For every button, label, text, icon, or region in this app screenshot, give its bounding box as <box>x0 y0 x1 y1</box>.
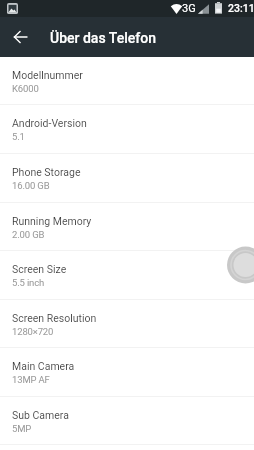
button[interactable]: Back <box>0 17 40 57</box>
button[interactable]: Screen Resolution <box>0 300 254 348</box>
staticText: K6000 <box>12 83 39 94</box>
staticText: 5.1 <box>12 131 25 142</box>
button[interactable]: Android-Version <box>0 105 254 154</box>
staticText: 5.5 inch <box>12 277 45 288</box>
button[interactable]: Screen Size <box>0 251 254 300</box>
staticText: 2.00 GB <box>12 229 45 240</box>
button[interactable]: Running Memory <box>0 203 254 251</box>
button[interactable]: Phone Storage <box>0 154 254 203</box>
staticText: 13MP AF <box>12 374 50 385</box>
staticText: Screen Size <box>12 263 67 275</box>
staticText: 5MP <box>12 423 32 434</box>
button[interactable]: Modellnummer <box>0 57 254 105</box>
staticText: 1280×720 <box>12 326 54 337</box>
button[interactable]: Main Camera <box>0 348 254 397</box>
staticText: Android-Version <box>12 117 87 129</box>
staticText: 16.00 GB <box>12 180 50 191</box>
staticText: Sub Camera <box>12 409 69 421</box>
staticText: Main Camera <box>12 360 75 372</box>
staticText: 23:11 <box>228 2 254 14</box>
staticText: Modellnummer <box>12 69 83 81</box>
staticText: 3G <box>182 2 196 15</box>
button[interactable]: Sub Camera <box>0 397 254 445</box>
staticText: Running Memory <box>12 215 92 227</box>
staticText: Über das Telefon <box>50 30 156 46</box>
staticText: Phone Storage <box>12 166 81 178</box>
staticText: Screen Resolution <box>12 312 97 324</box>
other: Assistive touch <box>0 0 254 450</box>
